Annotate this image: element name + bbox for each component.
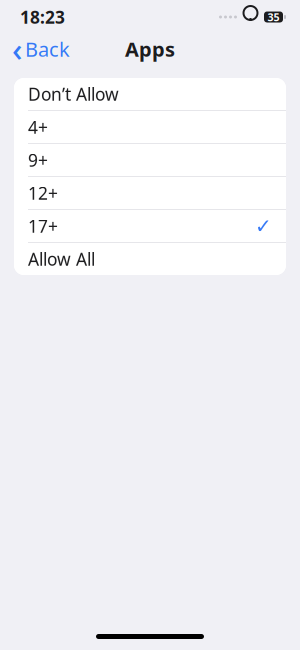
button[interactable]: Don’t Allow <box>14 78 286 110</box>
button[interactable]: Allow All <box>14 243 286 275</box>
staticText: 35 <box>267 10 279 24</box>
button[interactable]: 9+ <box>14 144 286 176</box>
staticText: Don’t Allow <box>28 82 119 105</box>
button[interactable]: 17+ <box>14 210 286 242</box>
button[interactable]: 12+ <box>14 177 286 209</box>
staticText: ‹ <box>12 28 22 70</box>
button[interactable]: ‹ <box>0 34 80 64</box>
staticText: Allow All <box>28 247 95 270</box>
staticText: 18:23 <box>20 5 65 28</box>
staticText: Apps <box>125 36 175 62</box>
staticText: 12+ <box>28 181 58 204</box>
staticText: Back <box>25 36 70 62</box>
staticText: 4+ <box>28 115 48 138</box>
staticText: 17+ <box>28 214 58 237</box>
staticText: ✓ <box>255 215 272 237</box>
staticText: 9+ <box>28 148 48 171</box>
button[interactable]: 4+ <box>14 111 286 143</box>
